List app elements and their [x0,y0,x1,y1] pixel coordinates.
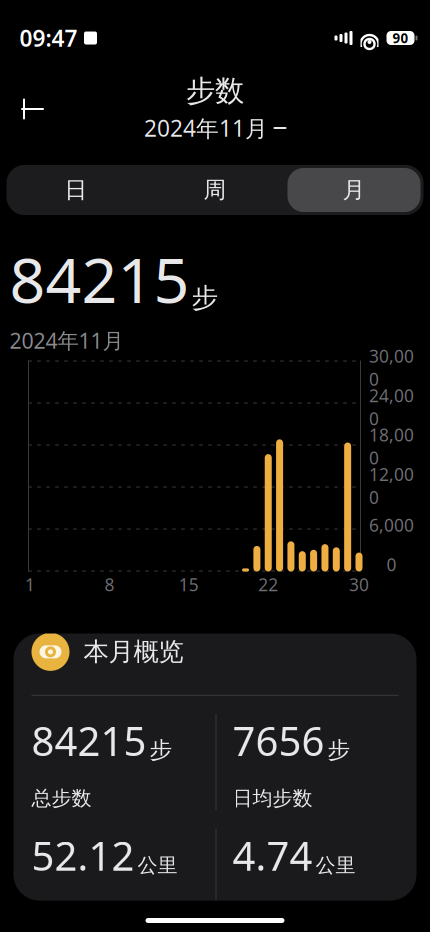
button[interactable]: 日 [6,165,145,215]
staticText: 本月概览 [83,636,183,667]
staticText: 4.74 [232,828,312,882]
staticText: 24,000 [369,384,414,430]
staticText: 84215 [31,714,146,767]
button[interactable]: 月 [284,165,423,215]
button[interactable]: 返回 [8,87,56,131]
button[interactable]: 周 [145,165,284,215]
staticText: 22 [258,573,278,596]
staticText: 步数 [186,73,244,109]
staticText: 84215 [9,237,189,320]
staticText: 15 [179,573,199,596]
staticText: 月 [342,176,365,204]
staticText: 总步数 [31,786,91,811]
staticText: 周 [203,176,226,204]
staticText: 7656 [232,714,324,767]
staticText: 18,000 [369,423,414,469]
button[interactable]: 2024年11月 [138,111,292,145]
staticText: 09:47 [19,23,77,53]
staticText: 步 [149,736,172,764]
staticText: 公里 [137,853,177,878]
staticText: 90 [392,29,408,47]
staticText: 8 [104,573,114,596]
staticText: 日均步数 [232,786,312,811]
staticText: 日 [64,176,87,204]
staticText: 30 [349,573,369,596]
staticText: 12,000 [369,463,414,509]
staticText: 0 [386,553,396,576]
staticText: 公里 [315,853,355,878]
staticText: 日均距离 [232,901,312,925]
staticText: 30,000 [369,344,414,390]
staticText: 步 [327,736,350,764]
staticText: 52.12 [31,828,134,882]
staticText: 1 [25,573,35,596]
staticText: 步 [191,281,218,314]
staticText: 2024年11月 [9,326,123,354]
staticText: 6,000 [369,514,414,537]
staticText: 2024年11月 [144,113,268,143]
